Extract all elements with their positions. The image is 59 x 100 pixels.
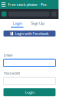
- staticText: Login with Facebook: [15, 31, 49, 36]
- staticText: Password: [3, 71, 19, 76]
- button[interactable]: Menu: [1, 2, 5, 6]
- staticText: Sign Up: [31, 20, 44, 26]
- staticText: Email: [3, 52, 12, 58]
- staticText: f: [11, 30, 13, 37]
- staticText: Free stock photos · Pex: [7, 2, 46, 7]
- staticText: Login: [13, 20, 22, 26]
- button[interactable]: Sign Up: [31, 20, 44, 27]
- button[interactable]: f: [3, 30, 55, 36]
- button[interactable]: Login: [11, 20, 24, 27]
- staticText: Login: [25, 89, 34, 95]
- button[interactable]: Login: [3, 88, 55, 96]
